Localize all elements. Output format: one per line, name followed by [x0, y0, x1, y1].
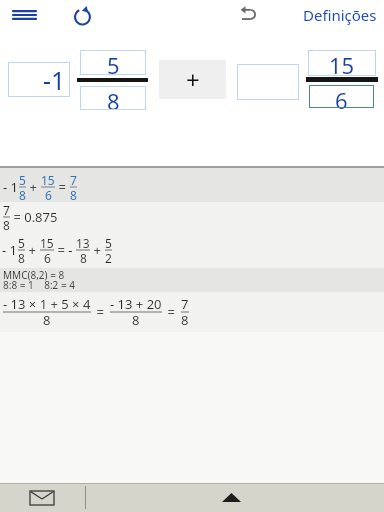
button[interactable]: + — [159, 60, 226, 99]
staticText: 15 — [329, 50, 355, 76]
staticText: 8 — [18, 250, 25, 266]
button[interactable]: 7 — [0, 202, 384, 231]
staticText: = 0.875 — [10, 208, 58, 226]
button[interactable]: 15 — [308, 50, 376, 76]
staticText: MMC(8,2) = 8 — [3, 268, 65, 282]
staticText: 5 — [105, 235, 112, 251]
staticText: 8 — [70, 187, 77, 203]
staticText: 6 — [44, 250, 51, 266]
staticText: -1 — [43, 63, 66, 97]
staticText: 7 — [181, 295, 189, 313]
button[interactable]: 6 — [309, 85, 374, 108]
staticText: 8 — [80, 250, 87, 266]
staticText: 8 — [107, 86, 120, 110]
staticText: 5 — [107, 50, 120, 75]
staticText: Definições — [303, 5, 377, 25]
button[interactable]: - 1 — [0, 168, 384, 202]
button[interactable] — [211, 486, 251, 508]
staticText: 8 — [43, 311, 51, 329]
button[interactable] — [20, 487, 64, 509]
staticText: - 1 — [2, 241, 18, 259]
staticText: 5 — [19, 172, 26, 188]
staticText: + — [25, 241, 40, 259]
staticText: 5 — [18, 235, 25, 251]
staticText: 6 — [335, 85, 348, 108]
button[interactable] — [68, 2, 96, 28]
staticText: 6 — [45, 187, 52, 203]
button[interactable]: - 13 × 1 + 5 × 4 — [0, 292, 384, 332]
button[interactable]: 5 — [80, 50, 146, 75]
button[interactable] — [234, 2, 262, 26]
staticText: 2 — [105, 250, 112, 266]
staticText: 7 — [3, 202, 10, 218]
staticText: + — [186, 63, 200, 96]
staticText: = — [164, 303, 179, 321]
staticText: 8:8 = 1 8:2 = 4 — [3, 278, 75, 292]
staticText: 8 — [3, 217, 10, 233]
staticText: 8 — [132, 311, 140, 329]
staticText: - 13 + 20 — [110, 295, 162, 313]
staticText: + — [26, 178, 41, 196]
staticText: = — [93, 303, 108, 321]
staticText: - 1 — [3, 178, 19, 196]
button[interactable]: Definições — [300, 2, 382, 28]
button[interactable]: 8 — [80, 86, 146, 110]
staticText: 7 — [70, 172, 77, 188]
staticText: + — [90, 241, 105, 259]
staticText: 15 — [41, 172, 55, 188]
staticText: 15 — [40, 235, 54, 251]
button[interactable] — [6, 2, 42, 27]
button[interactable] — [237, 64, 299, 100]
staticText: = — [55, 178, 70, 196]
button[interactable]: -1 — [8, 62, 70, 97]
staticText: 8 — [181, 311, 189, 329]
staticText: 8 — [19, 187, 26, 203]
button[interactable]: MMC(8,2) = 8 — [0, 268, 384, 292]
staticText: = - — [54, 241, 76, 259]
staticText: 13 — [76, 235, 90, 251]
button[interactable]: - 1 — [0, 231, 384, 268]
staticText: - 13 × 1 + 5 × 4 — [3, 295, 91, 313]
